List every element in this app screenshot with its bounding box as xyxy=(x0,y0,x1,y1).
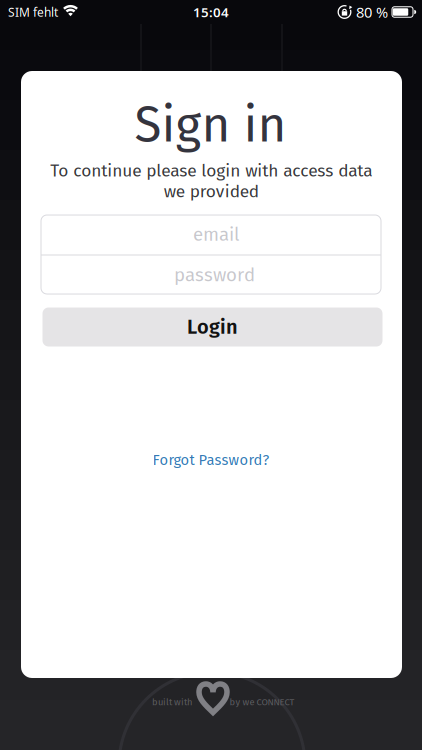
staticText: To continue please login with access dat… xyxy=(50,160,372,202)
staticText: SIM fehlt xyxy=(8,4,58,20)
button[interactable]: Login xyxy=(42,307,382,346)
button[interactable]: email xyxy=(46,215,386,254)
button[interactable]: Forgot Password? xyxy=(152,451,269,469)
staticText: 80 % xyxy=(356,2,388,22)
staticText: password xyxy=(174,264,255,286)
staticText: by we CONNECT xyxy=(229,696,294,708)
staticText: Forgot Password? xyxy=(152,451,269,469)
staticText: Login xyxy=(187,315,238,339)
staticText: 15:04 xyxy=(193,3,229,21)
button[interactable]: password xyxy=(44,255,384,294)
staticText: email xyxy=(193,223,239,246)
staticText: built with xyxy=(152,696,192,708)
staticText: Sign in xyxy=(134,95,286,155)
